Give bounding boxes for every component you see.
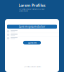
- staticText: Lorem ipsum dolor sit amet: [23, 66, 40, 68]
- staticText: Lorem ipsum dolor sit amet consectetur a…: [19, 8, 45, 12]
- button[interactable]: Lorem: [23, 41, 41, 44]
- staticText: Lorem Profiles: [18, 3, 45, 8]
- staticText: Lorem: [28, 41, 36, 44]
- button[interactable]: Lorem ipsum dolor: [7, 25, 57, 29]
- staticText: Lorem ipsum dolor: [19, 25, 45, 28]
